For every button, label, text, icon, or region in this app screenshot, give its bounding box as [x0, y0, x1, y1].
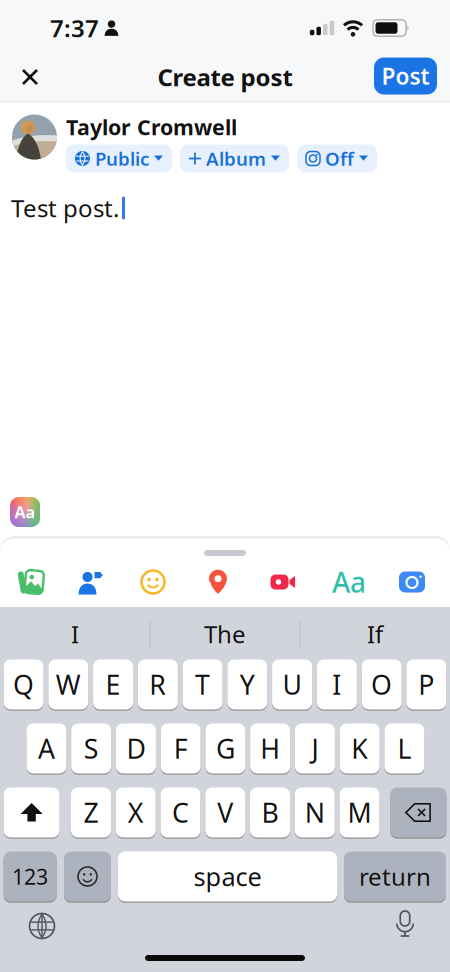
button[interactable] [4, 787, 60, 839]
staticText: M [347, 795, 371, 830]
button[interactable]: return [344, 851, 446, 903]
staticText: Post [381, 61, 429, 91]
staticText: U [283, 667, 302, 702]
button[interactable] [270, 573, 295, 591]
button[interactable]: E [93, 659, 133, 711]
button[interactable]: S [71, 723, 111, 775]
button[interactable]: W [48, 659, 88, 711]
staticText: Test post. [11, 192, 119, 224]
button[interactable]: A [26, 723, 66, 775]
button[interactable]: 123 [4, 851, 57, 903]
staticText: Taylor Cromwell [66, 113, 237, 141]
staticText: G [216, 731, 235, 766]
button[interactable]: B [250, 787, 290, 839]
staticText: F [174, 731, 188, 766]
staticText: S [84, 731, 99, 766]
button[interactable]: J [295, 723, 335, 775]
button[interactable]: H [250, 723, 290, 775]
button[interactable]: The [155, 611, 295, 657]
button[interactable]: X [116, 787, 156, 839]
staticText: J [311, 731, 318, 766]
staticText: space [193, 860, 261, 893]
button[interactable]: Aa [10, 497, 40, 527]
button[interactable]: I [317, 659, 357, 711]
button[interactable]: U [272, 659, 312, 711]
staticText: O [371, 667, 392, 702]
button[interactable]: space [118, 851, 337, 903]
button[interactable]: Y [227, 659, 267, 711]
button[interactable] [399, 571, 425, 592]
staticText: I [71, 618, 79, 650]
staticText: Create post [157, 61, 292, 93]
staticText: return [359, 861, 431, 892]
staticText: Z [83, 795, 98, 830]
button[interactable]: I [5, 611, 145, 657]
button[interactable]: Album [180, 144, 289, 172]
staticText: Off [325, 146, 354, 171]
staticText: W [56, 667, 81, 702]
button[interactable]: V [205, 787, 245, 839]
button[interactable] [64, 851, 111, 903]
button[interactable] [77, 570, 103, 595]
staticText: Aa [332, 563, 366, 601]
staticText: X [128, 795, 144, 830]
button[interactable]: O [362, 659, 402, 711]
button[interactable]: C [160, 787, 200, 839]
staticText: Y [240, 667, 255, 702]
button[interactable]: Aa [332, 563, 366, 601]
button[interactable]: R [138, 659, 178, 711]
staticText: B [261, 795, 278, 830]
staticText: H [260, 731, 280, 766]
button[interactable]: L [384, 723, 424, 775]
button[interactable] [140, 569, 165, 594]
staticText: V [217, 795, 233, 830]
button[interactable]: K [340, 723, 380, 775]
button[interactable]: If [305, 611, 445, 657]
button[interactable] [395, 911, 415, 937]
button[interactable]: D [116, 723, 156, 775]
button[interactable] [29, 913, 54, 938]
staticText: N [305, 795, 325, 830]
button[interactable]: G [205, 723, 245, 775]
button[interactable]: Q [4, 659, 44, 711]
staticText: R [149, 667, 166, 702]
staticText: 7:37 [50, 12, 99, 44]
staticText: L [397, 731, 411, 766]
staticText: T [195, 667, 210, 702]
staticText: Aa [14, 501, 35, 523]
staticText: D [126, 731, 145, 766]
staticText: C [172, 795, 189, 830]
button[interactable]: F [161, 723, 201, 775]
button[interactable] [209, 569, 227, 594]
button[interactable]: N [295, 787, 335, 839]
staticText: I [332, 667, 341, 702]
staticText: If [367, 618, 383, 650]
staticText: Q [13, 667, 34, 702]
button[interactable]: Public [66, 144, 172, 172]
button[interactable]: P [406, 659, 446, 711]
staticText: 123 [12, 862, 48, 891]
button[interactable]: Off [297, 144, 377, 172]
button[interactable] [18, 568, 46, 595]
staticText: A [38, 731, 55, 766]
button[interactable] [21, 68, 38, 85]
button[interactable]: Post [374, 57, 437, 94]
staticText: E [106, 667, 121, 702]
staticText: P [418, 667, 434, 702]
button[interactable]: T [183, 659, 223, 711]
button[interactable]: Z [71, 787, 111, 839]
button[interactable] [390, 787, 446, 839]
staticText: Public [95, 146, 149, 171]
staticText: The [204, 618, 246, 650]
button[interactable]: M [339, 787, 379, 839]
staticText: K [351, 731, 368, 766]
staticText: Album [206, 146, 266, 171]
